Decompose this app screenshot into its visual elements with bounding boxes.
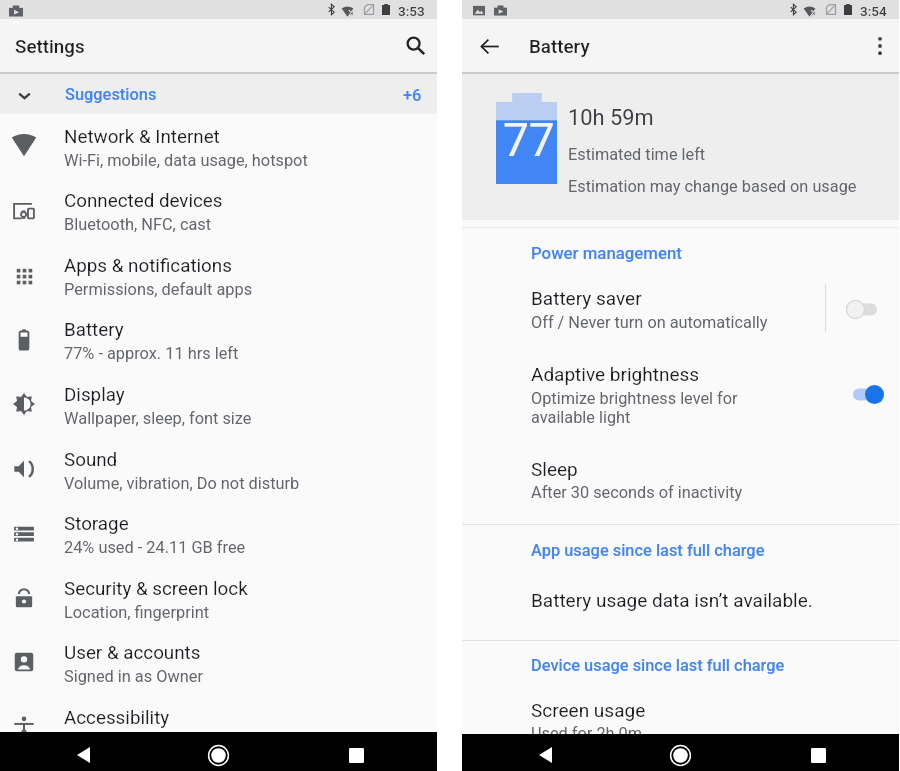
staticText: Battery bbox=[529, 36, 590, 58]
staticText: Accessibility bbox=[64, 707, 170, 729]
staticText: Battery usage data isn’t available. bbox=[531, 589, 813, 611]
staticText: 77 bbox=[503, 113, 555, 167]
staticText: Optimize brightness level for bbox=[531, 389, 738, 408]
button[interactable]: Battery saver toggle bbox=[828, 286, 894, 332]
button[interactable]: Accessibility bbox=[0, 694, 437, 758]
staticText: Sound bbox=[64, 449, 118, 471]
staticText: Bluetooth, NFC, cast bbox=[64, 215, 212, 234]
staticText: Permissions, default apps bbox=[64, 280, 253, 299]
staticText: Wallpaper, sleep, font size bbox=[64, 409, 252, 428]
button[interactable]: Back bbox=[517, 737, 571, 771]
staticText: App usage since last full charge bbox=[531, 541, 765, 560]
button[interactable]: Network & Internet bbox=[0, 113, 437, 177]
button[interactable]: Battery bbox=[0, 306, 437, 370]
staticText: Battery saver bbox=[531, 287, 642, 309]
button[interactable]: Battery bbox=[517, 19, 627, 72]
button[interactable]: Adaptive brightness toggle bbox=[835, 371, 900, 417]
button[interactable]: Adaptive brightness bbox=[462, 350, 899, 435]
staticText: 3:54 bbox=[860, 3, 887, 19]
button[interactable]: User & accounts bbox=[0, 629, 437, 693]
staticText: Location, fingerprint bbox=[64, 603, 210, 622]
staticText: Suggestions bbox=[65, 85, 157, 104]
button[interactable]: Apps & notifications bbox=[0, 242, 437, 306]
staticText: Estimated time left bbox=[568, 145, 706, 164]
staticText: 24% used - 24.11 GB free bbox=[64, 538, 246, 557]
staticText: Volume, vibration, Do not disturb bbox=[64, 474, 300, 493]
button[interactable]: Suggestions bbox=[0, 73, 437, 113]
staticText: Adaptive brightness bbox=[531, 363, 700, 385]
staticText: Screen usage bbox=[531, 699, 646, 721]
staticText: Power management bbox=[531, 243, 682, 263]
button[interactable]: Security & screen lock bbox=[0, 565, 437, 629]
staticText: Wi-Fi, mobile, data usage, hotspot bbox=[64, 151, 308, 170]
staticText: Settings bbox=[15, 36, 85, 58]
staticText: Sleep bbox=[531, 458, 578, 480]
staticText: Estimation may change based on usage bbox=[568, 177, 857, 196]
button[interactable]: Storage bbox=[0, 500, 437, 564]
button[interactable]: Settings bbox=[0, 19, 140, 72]
button[interactable]: Recent apps bbox=[791, 737, 845, 771]
staticText: available light bbox=[531, 408, 631, 427]
staticText: Display bbox=[64, 384, 125, 406]
staticText: Network & Internet bbox=[64, 126, 220, 148]
staticText: +6 bbox=[403, 86, 422, 105]
staticText: Off / Never turn on automatically bbox=[531, 313, 768, 332]
staticText: 77% - approx. 11 hrs left bbox=[64, 344, 239, 363]
button[interactable]: Battery usage data isn’t available. bbox=[462, 575, 899, 620]
button[interactable]: Home bbox=[191, 737, 245, 771]
staticText: Security & screen lock bbox=[64, 578, 248, 600]
button[interactable]: Recent apps bbox=[329, 737, 383, 771]
button[interactable]: More options bbox=[861, 27, 899, 65]
button[interactable]: Search bbox=[394, 25, 434, 65]
staticText: User & accounts bbox=[64, 642, 201, 664]
button[interactable]: Back bbox=[55, 737, 109, 771]
staticText: Used for 2h 0m bbox=[531, 724, 643, 743]
button[interactable]: Sound bbox=[0, 436, 437, 500]
staticText: Connected devices bbox=[64, 190, 223, 212]
staticText: 3:53 bbox=[398, 3, 425, 19]
staticText: 10h 59m bbox=[568, 105, 654, 131]
staticText: Storage bbox=[64, 513, 129, 535]
button[interactable]: Screen usage bbox=[462, 690, 899, 735]
staticText: After 30 seconds of inactivity bbox=[531, 483, 743, 502]
button[interactable]: Sleep bbox=[462, 445, 899, 510]
staticText: Device usage since last full charge bbox=[531, 656, 785, 675]
button[interactable]: Battery saver bbox=[462, 275, 899, 340]
button[interactable]: Home bbox=[653, 737, 707, 771]
staticText: Signed in as Owner bbox=[64, 667, 204, 686]
button[interactable]: Connected devices bbox=[0, 177, 437, 241]
staticText: Apps & notifications bbox=[64, 255, 232, 277]
button[interactable]: Back bbox=[469, 27, 507, 65]
staticText: Battery bbox=[64, 319, 124, 341]
button[interactable]: Display bbox=[0, 371, 437, 435]
